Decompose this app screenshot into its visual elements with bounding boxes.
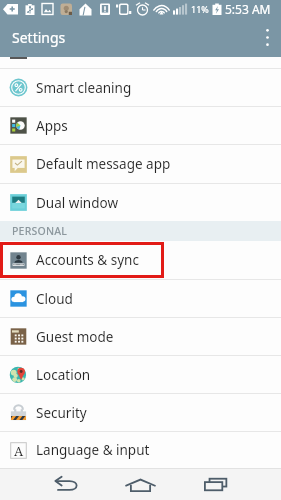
button[interactable]: Default message app xyxy=(0,145,281,183)
staticText: Cloud xyxy=(36,290,73,308)
button[interactable]: Smart cleaning xyxy=(0,69,281,106)
button[interactable]: Dual window xyxy=(0,184,281,221)
staticText: Smart cleaning xyxy=(36,79,132,97)
button[interactable]: Back xyxy=(41,469,89,500)
staticText: Accounts & sync xyxy=(36,251,139,269)
button[interactable]: More options xyxy=(253,18,281,57)
staticText: 5:53 AM xyxy=(225,1,271,17)
button[interactable]: Recent apps xyxy=(192,469,241,500)
staticText: PERSONAL xyxy=(12,224,68,238)
button[interactable]: A xyxy=(0,432,281,468)
button[interactable]: Guest mode xyxy=(0,318,281,355)
staticText: Settings xyxy=(12,28,66,47)
button[interactable]: Accounts & sync xyxy=(0,241,281,279)
button[interactable]: Security xyxy=(0,394,281,431)
staticText: Language & input xyxy=(36,441,150,459)
staticText: Dual window xyxy=(36,194,119,212)
staticText: Security xyxy=(36,404,87,422)
staticText: Default message app xyxy=(36,155,171,173)
button[interactable]: Home xyxy=(116,469,165,500)
staticText: Location xyxy=(36,366,91,384)
button[interactable]: Cloud xyxy=(0,280,281,317)
staticText: Apps xyxy=(36,117,68,135)
staticText: Guest mode xyxy=(36,328,114,346)
staticText: A xyxy=(14,442,24,460)
button[interactable]: Apps xyxy=(0,107,281,144)
button[interactable]: Location xyxy=(0,356,281,393)
staticText: 11% xyxy=(191,3,209,15)
